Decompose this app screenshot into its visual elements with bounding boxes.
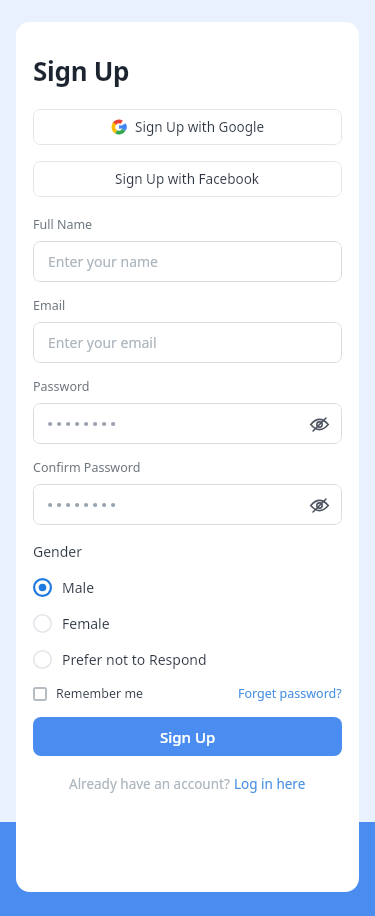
- button[interactable]: Sign Up with Google: [33, 109, 342, 145]
- button[interactable]: Sign Up: [33, 717, 342, 756]
- staticText: Remember me: [56, 685, 144, 702]
- button[interactable]: Toggle password visibility: [308, 413, 330, 435]
- button[interactable]: Forget password?: [238, 685, 342, 702]
- button[interactable]: Remember me: [33, 685, 150, 702]
- button[interactable]: Male: [33, 569, 342, 605]
- staticText: Already have an account?: [69, 775, 234, 793]
- staticText: Enter your name: [48, 252, 158, 271]
- button[interactable]: Toggle password visibility: [308, 494, 330, 516]
- button[interactable]: Female: [33, 605, 342, 641]
- staticText: Female: [62, 614, 110, 633]
- staticText: Full Name: [33, 216, 93, 233]
- staticText: Forget password?: [238, 685, 342, 702]
- staticText: Sign Up with Google: [135, 118, 265, 136]
- staticText: Prefer not to Respond: [62, 650, 207, 669]
- button[interactable]: Sign Up with Facebook: [33, 161, 342, 197]
- staticText: Gender: [33, 542, 83, 561]
- staticText: Male: [62, 578, 95, 597]
- staticText: Enter your email: [48, 333, 157, 352]
- button[interactable]: Toggle password visibility: [33, 403, 342, 444]
- button[interactable]: Toggle password visibility: [33, 484, 342, 525]
- staticText: Password: [33, 378, 90, 395]
- button[interactable]: Log in here: [234, 775, 306, 793]
- button[interactable]: Enter your email: [33, 322, 342, 363]
- staticText: Log in here: [234, 775, 306, 793]
- button[interactable]: Enter your name: [33, 241, 342, 282]
- staticText: Email: [33, 297, 66, 314]
- button[interactable]: Prefer not to Respond: [33, 641, 342, 677]
- staticText: Sign Up with Facebook: [115, 170, 260, 188]
- staticText: Sign Up: [33, 53, 130, 88]
- staticText: Sign Up: [160, 727, 216, 747]
- staticText: Confirm Password: [33, 459, 141, 476]
